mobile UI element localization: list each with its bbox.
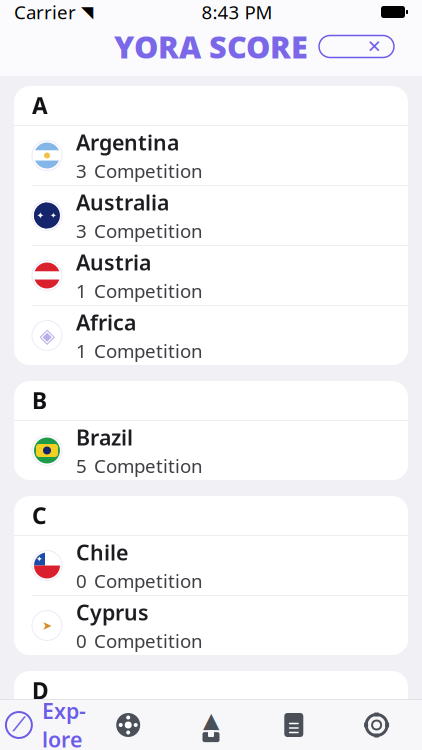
staticText: Argentina	[76, 128, 179, 156]
staticText: Chile	[76, 538, 128, 566]
staticText: Competition	[94, 338, 203, 363]
button[interactable]: Settings	[335, 700, 418, 750]
staticText: 1	[76, 338, 87, 363]
staticText: Cyprus	[76, 598, 149, 626]
staticText: 3	[76, 218, 87, 243]
staticText: Carrier	[14, 0, 76, 24]
staticText: Africa	[76, 308, 136, 336]
button[interactable]: Austria	[14, 246, 408, 306]
button[interactable]: ✦	[14, 536, 408, 596]
button[interactable]: Brazil	[14, 421, 408, 480]
staticText: ➤	[42, 619, 52, 632]
staticText: ◈	[39, 324, 54, 347]
staticText: Brazil	[76, 423, 133, 451]
button[interactable]: ◈	[14, 306, 408, 365]
staticText: 5	[76, 453, 87, 478]
staticText: ✕	[367, 37, 382, 56]
staticText: Denmark	[76, 713, 172, 741]
staticText: D	[32, 675, 49, 705]
staticText: 8:43 PM	[201, 0, 272, 24]
staticText: 3	[76, 158, 87, 183]
button[interactable]: ⟋	[4, 700, 87, 750]
button[interactable]: ◈	[14, 711, 408, 750]
staticText: ✦	[36, 554, 43, 564]
staticText: Competition	[94, 278, 203, 303]
staticText: 1	[76, 278, 87, 303]
staticText: 2	[76, 743, 87, 750]
staticText: Explore	[42, 697, 86, 750]
staticText: ⟋	[12, 715, 26, 735]
staticText: 0	[76, 568, 87, 593]
staticText: ✦	[50, 211, 57, 220]
button[interactable]: Home	[170, 700, 252, 750]
staticText: YORA SCORE	[114, 26, 308, 67]
staticText: Australia	[76, 188, 169, 216]
staticText: Competition	[94, 158, 203, 183]
button[interactable]: Matches	[87, 700, 170, 750]
button[interactable]: News	[252, 700, 335, 750]
staticText: ◈	[39, 729, 54, 750]
button[interactable]: ➤	[14, 596, 408, 655]
staticText: ◥	[81, 3, 93, 21]
staticText: ▲	[203, 708, 219, 732]
staticText: Competition	[94, 453, 203, 478]
staticText: Austria	[76, 248, 151, 276]
staticText: 0	[76, 628, 87, 653]
button[interactable]: Clear search	[319, 35, 394, 57]
button[interactable]: ✦	[14, 186, 408, 246]
staticText: C	[32, 500, 47, 530]
staticText: B	[32, 385, 47, 415]
staticText: Competition	[94, 218, 203, 243]
staticText: Competition	[94, 628, 203, 653]
staticText: A	[32, 90, 48, 120]
staticText: ✦	[36, 210, 44, 221]
staticText: Competition	[94, 568, 203, 593]
button[interactable]: Argentina	[14, 126, 408, 186]
